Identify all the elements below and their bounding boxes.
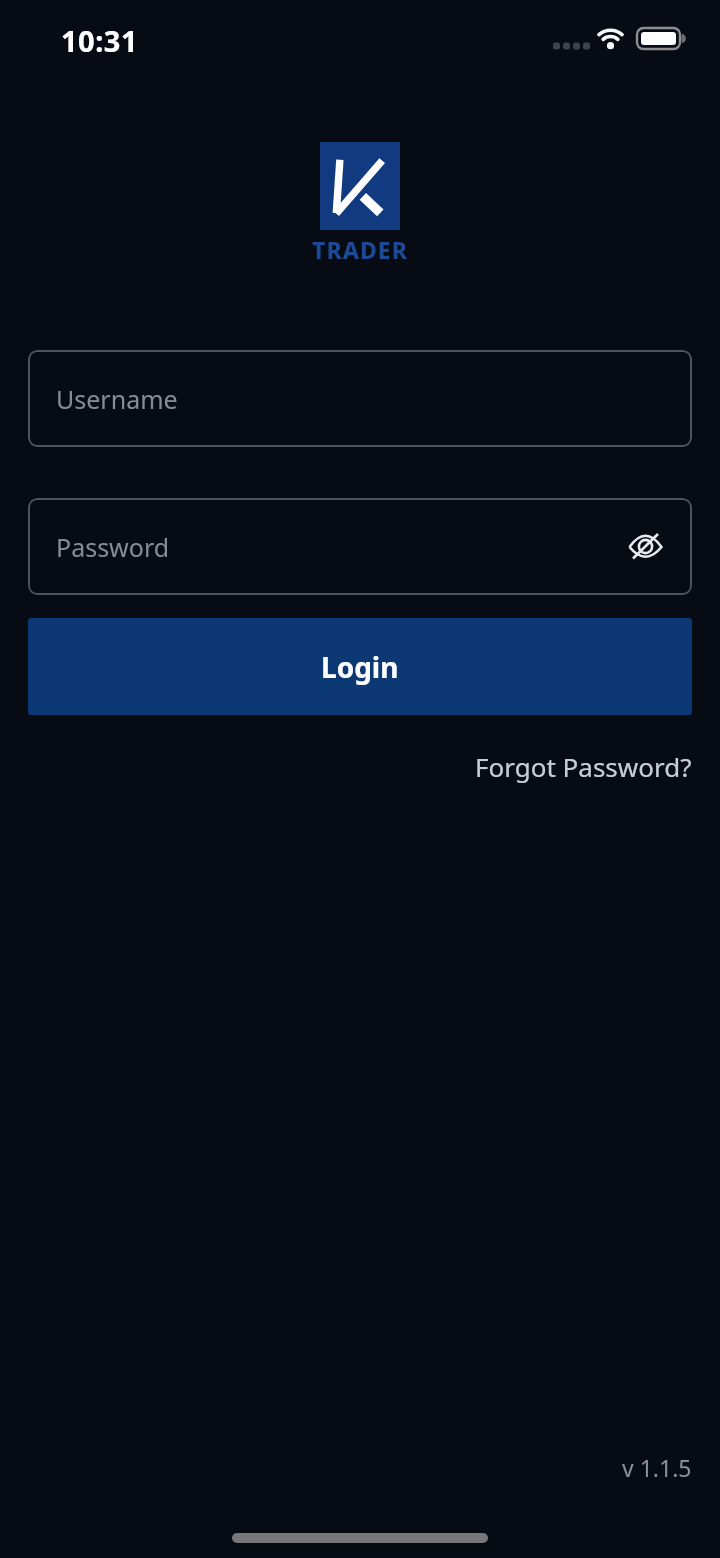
button[interactable]: Forgot Password? [475,749,692,784]
staticText: TRADER [312,234,408,264]
staticText: Username [56,382,178,416]
staticText: Password [56,530,170,564]
staticText: Login [321,648,399,686]
button[interactable]: Password [28,498,692,595]
button[interactable]: Username [28,350,692,447]
button[interactable]: Login [28,618,692,715]
staticText: Forgot Password? [475,749,692,784]
button[interactable] [617,518,673,574]
staticText: 10:31 [61,21,139,60]
staticText: v 1.1.5 [622,1452,692,1483]
